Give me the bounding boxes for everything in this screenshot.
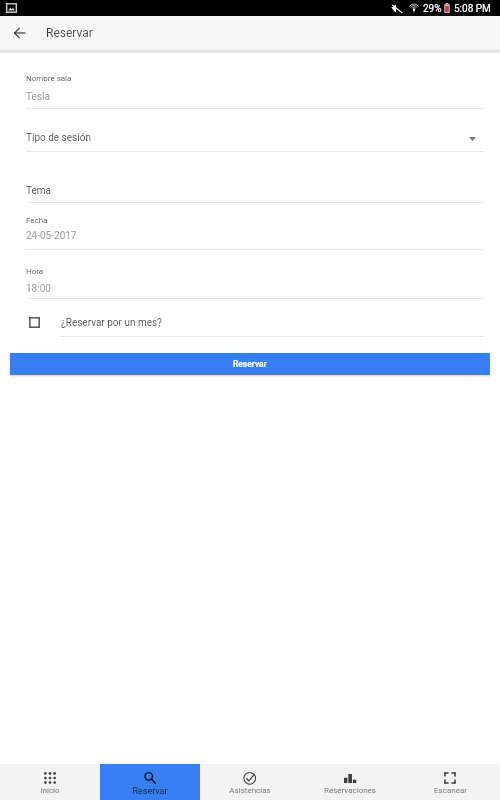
button[interactable]: Inicio [0, 764, 100, 800]
staticText: Inicio [40, 786, 60, 795]
staticText: Hora [26, 267, 44, 276]
staticText: Reservar [132, 786, 168, 797]
staticText: Tipo de sesión [26, 132, 91, 144]
button[interactable]: Back [6, 19, 34, 47]
button[interactable]: Nombre sala [26, 70, 484, 109]
button[interactable]: Escanear [400, 764, 500, 800]
staticText: Escanear [434, 786, 467, 795]
staticText: Reservar [233, 359, 267, 369]
staticText: Fecha [26, 216, 48, 225]
button[interactable]: Reservar [10, 353, 490, 375]
staticText: ¿Reservar por un mes? [61, 317, 162, 329]
staticText: 24-05-2017 [26, 230, 77, 242]
button[interactable]: Tipo de sesión [26, 129, 484, 147]
button[interactable]: Hora [26, 262, 484, 299]
staticText: Tema [26, 185, 51, 197]
button[interactable]: Reservaciones [300, 764, 400, 800]
button[interactable]: Reservar [100, 764, 200, 800]
staticText: Asistencias [229, 786, 271, 795]
staticText: Tesla [26, 91, 50, 103]
staticText: Nombre sala [26, 74, 72, 83]
button[interactable]: ¿Reservar por un mes? [29, 317, 40, 328]
staticText: 5:08 PM [454, 3, 491, 15]
staticText: Reservaciones [324, 786, 376, 795]
staticText: 29% [423, 3, 442, 15]
button[interactable]: Fecha [26, 212, 484, 250]
button[interactable]: Tema [26, 180, 484, 203]
staticText: Reservar [46, 26, 93, 40]
staticText: 18:00 [26, 283, 51, 295]
button[interactable]: Asistencias [200, 764, 300, 800]
